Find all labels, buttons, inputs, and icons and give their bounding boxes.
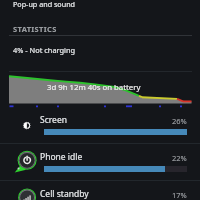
staticText: Phone idle bbox=[40, 151, 83, 163]
button[interactable]: Screen brightness bbox=[0, 107, 200, 144]
staticText: STATISTICS bbox=[13, 24, 57, 34]
staticText: 22% bbox=[172, 153, 187, 163]
other: Phone idle bbox=[17, 147, 38, 168]
button[interactable]: STATISTICS bbox=[0, 20, 200, 38]
staticText: 17% bbox=[172, 190, 187, 200]
staticText: Pop-up and sound bbox=[13, 0, 76, 9]
staticText: 4% - Not charging bbox=[13, 45, 76, 55]
staticText: 26% bbox=[172, 116, 187, 126]
button[interactable]: Cell standby bbox=[0, 181, 200, 200]
button[interactable]: Phone idle bbox=[0, 144, 200, 181]
button[interactable]: Pop-up and sound bbox=[0, 0, 200, 15]
staticText: Cell standby bbox=[40, 188, 89, 200]
staticText: Screen bbox=[40, 114, 67, 126]
staticText: 3d 9h 12m 40s on battery bbox=[47, 82, 141, 93]
other: Screen brightness bbox=[17, 110, 38, 131]
other: Cell standby bbox=[17, 184, 38, 200]
